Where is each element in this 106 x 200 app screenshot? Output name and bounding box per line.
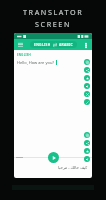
staticText: ENGLISH [34,42,51,47]
staticText: كيف حالك ، مرحبا [58,165,88,170]
button[interactable]: Favorite [84,75,90,81]
button[interactable]: Share [84,67,90,73]
button[interactable]: Edit [84,99,90,105]
staticText: Hello, How are you? [17,60,55,65]
staticText: SCREEN [35,19,72,29]
button[interactable]: Clear [84,91,90,97]
button[interactable]: Share translation [84,140,90,146]
staticText: ENGLISH [17,53,31,57]
button[interactable]: Favorite translation [84,148,90,154]
staticText: ARABIC [59,42,73,47]
button[interactable]: Speak [84,83,90,89]
button[interactable]: Menu [16,40,25,49]
staticText: TRANSLATOR [23,7,84,17]
button[interactable]: More options [82,41,90,49]
button[interactable]: Copy [84,59,90,65]
button[interactable]: Play translation [48,152,59,163]
button[interactable]: Copy translation [84,132,90,138]
button[interactable]: Speak translation [84,156,90,162]
button[interactable]: ENGLISH [30,41,77,48]
